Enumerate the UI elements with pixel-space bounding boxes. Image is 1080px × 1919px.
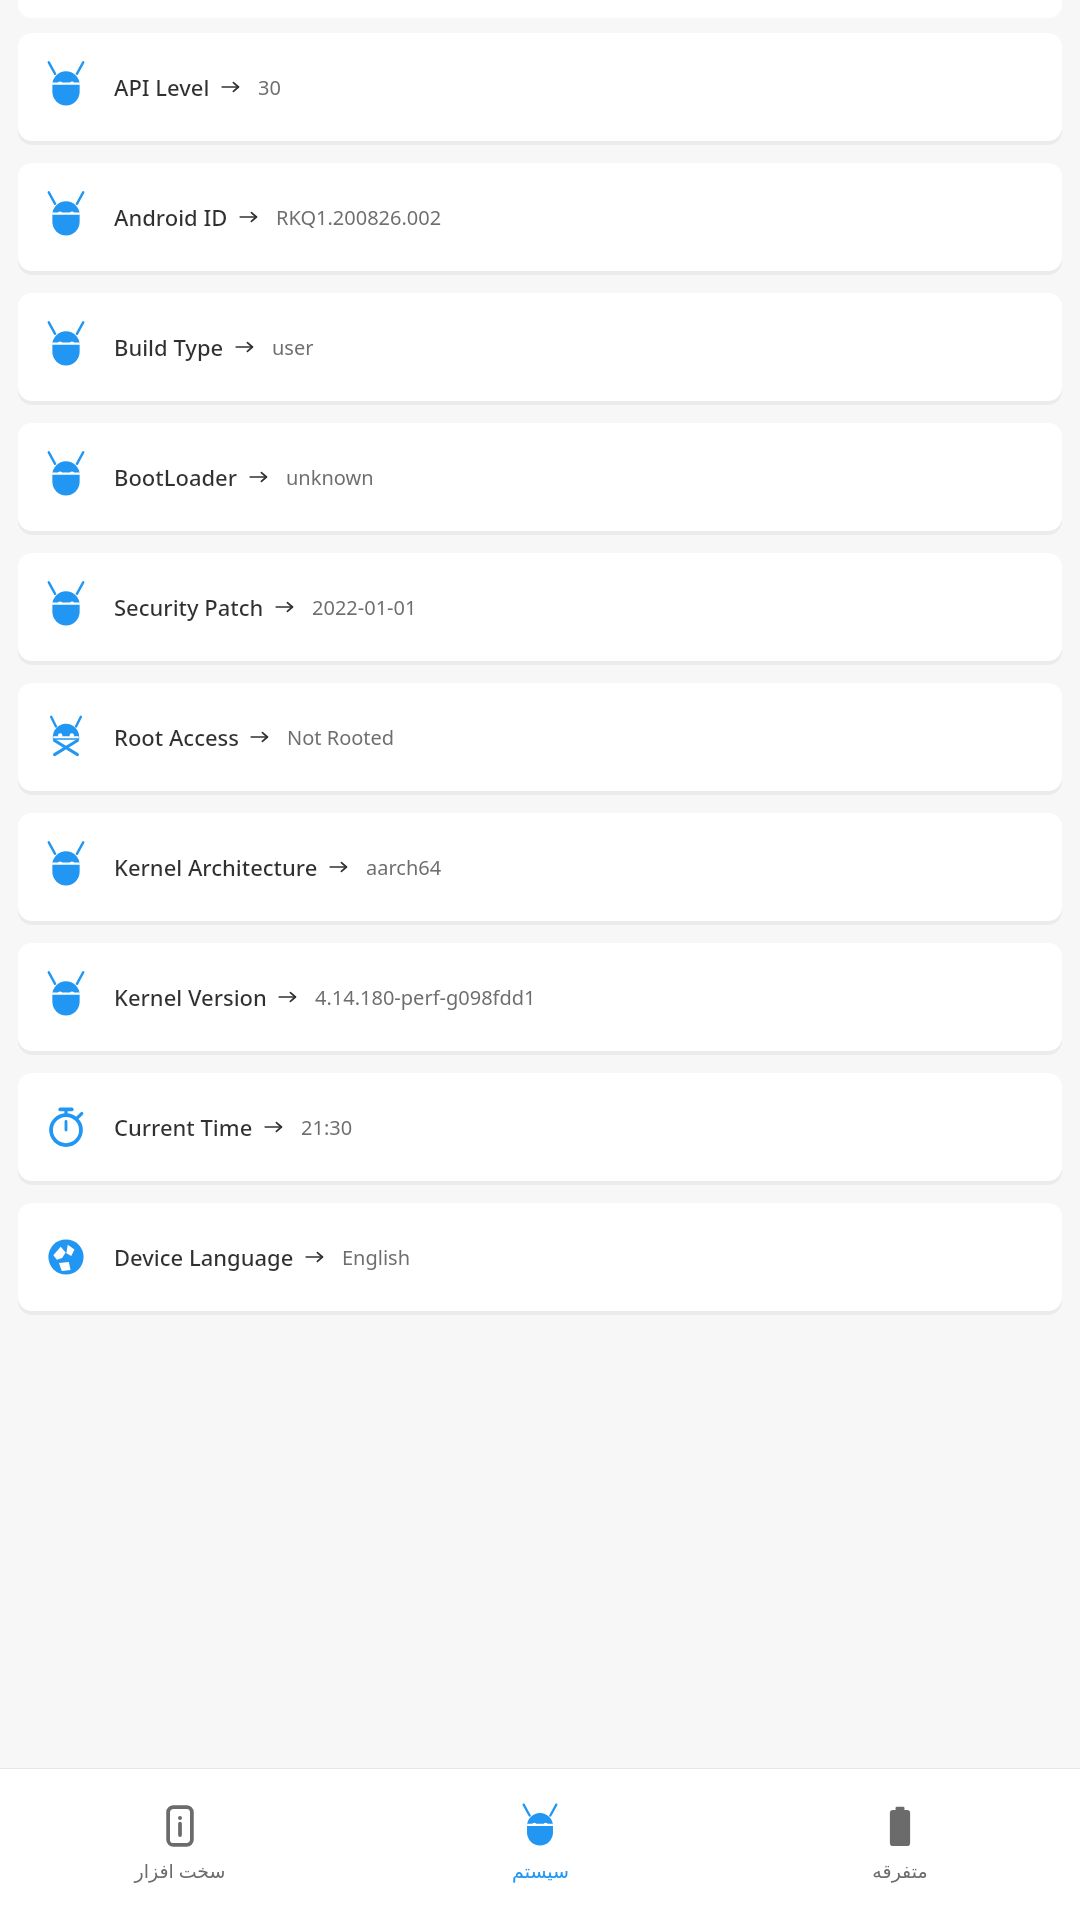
staticText: Not Rooted: [287, 724, 395, 751]
button[interactable]: Security Patch: [18, 553, 1062, 661]
staticText: 4.14.180-perf-g098fdd1: [315, 984, 536, 1011]
button[interactable]: Miscellaneous: [720, 1796, 1080, 1892]
button[interactable]: BootLoader: [18, 423, 1062, 531]
button[interactable]: Hardware: [0, 1794, 360, 1894]
button[interactable]: Kernel Version: [18, 943, 1062, 1051]
staticText: 21:30: [301, 1114, 353, 1141]
staticText: aarch64: [366, 854, 442, 881]
staticText: unknown: [286, 464, 374, 491]
button[interactable]: Build Type: [18, 293, 1062, 401]
staticText: Kernel Architecture: [114, 852, 318, 882]
staticText: English: [342, 1244, 411, 1271]
button[interactable]: System: [360, 1796, 720, 1892]
staticText: سخت افزار: [134, 1858, 226, 1884]
staticText: API Level: [114, 72, 210, 102]
button[interactable]: Android ID: [18, 163, 1062, 271]
staticText: 2022-01-01: [312, 594, 417, 621]
staticText: Current Time: [114, 1112, 253, 1142]
button[interactable]: Root Access: [18, 683, 1062, 791]
staticText: BootLoader: [114, 462, 238, 492]
button[interactable]: Device Language: [18, 1203, 1062, 1311]
staticText: 30: [258, 74, 281, 101]
staticText: Kernel Version: [114, 982, 267, 1012]
staticText: متفرقه: [872, 1860, 928, 1882]
button[interactable]: Current Time: [18, 1073, 1062, 1181]
staticText: Build Type: [114, 332, 224, 362]
staticText: Root Access: [114, 722, 239, 752]
staticText: Android ID: [114, 202, 228, 232]
staticText: RKQ1.200826.002: [276, 204, 442, 231]
staticText: user: [272, 334, 314, 361]
staticText: Security Patch: [114, 592, 264, 622]
button[interactable]: Kernel Architecture: [18, 813, 1062, 921]
staticText: Device Language: [114, 1242, 294, 1272]
button[interactable]: API Level: [18, 33, 1062, 141]
staticText: سیستم: [512, 1860, 569, 1882]
